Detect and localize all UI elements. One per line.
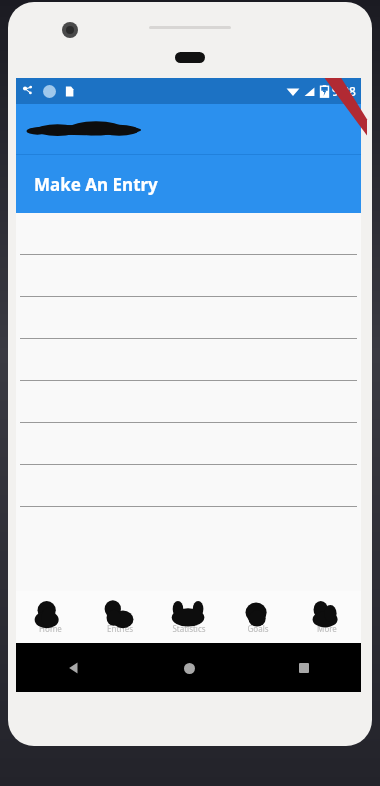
button[interactable]: Entries	[85, 591, 154, 643]
button[interactable]: More	[292, 591, 361, 643]
button[interactable]: Home	[16, 591, 85, 643]
button[interactable]: Recents	[293, 657, 315, 679]
button[interactable]: Statistics	[154, 591, 223, 643]
staticText: Entries	[107, 623, 133, 634]
staticText: Home	[39, 623, 62, 634]
button[interactable]: Back	[63, 657, 85, 679]
staticText: Goals	[247, 623, 269, 634]
button[interactable]: Goals	[223, 591, 292, 643]
button[interactable]: Home	[178, 657, 200, 679]
staticText: More	[317, 623, 337, 634]
staticText: Make An Entry	[34, 173, 158, 196]
button[interactable]: Make An Entry	[16, 155, 361, 213]
staticText: 9:38	[332, 83, 356, 99]
staticText: Statistics	[172, 623, 206, 634]
